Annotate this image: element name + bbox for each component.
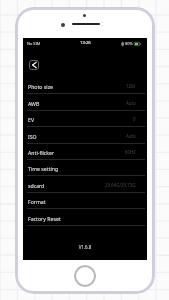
staticText: Auto — [126, 133, 136, 139]
staticText: 60HZ — [125, 149, 136, 155]
staticText: 29.64G/29.73G — [105, 182, 136, 188]
button[interactable]: Anti-flicker — [23, 144, 147, 160]
staticText: Format — [28, 198, 46, 205]
button[interactable]: AWB — [23, 95, 147, 111]
staticText: 0 — [133, 116, 136, 122]
button[interactable]: Format — [23, 193, 147, 209]
staticText: sdcard — [28, 182, 45, 189]
button[interactable]: ISO — [23, 128, 147, 144]
staticText: 12M — [126, 83, 136, 89]
button[interactable]: sdcard — [23, 177, 147, 193]
staticText: AWB — [28, 100, 40, 107]
button[interactable]: Factory Reset — [23, 210, 147, 226]
staticText: 80% — [125, 41, 133, 46]
staticText: Anti-flicker — [28, 149, 55, 156]
staticText: Auto — [126, 100, 136, 106]
button[interactable]: EV — [23, 111, 147, 127]
button[interactable]: Photo size — [23, 78, 147, 94]
staticText: Photo size — [28, 83, 54, 90]
button[interactable]: Home — [74, 265, 96, 287]
button[interactable]: Back — [29, 60, 39, 70]
staticText: EV — [28, 116, 34, 123]
button[interactable]: Time setting — [23, 160, 147, 176]
staticText: ISO — [28, 133, 37, 140]
staticText: No SIM — [27, 41, 41, 46]
staticText: Time setting — [28, 165, 59, 172]
staticText: 13:26 — [80, 40, 91, 46]
staticText: V1.6.8 — [23, 244, 147, 250]
staticText: Factory Reset — [28, 215, 61, 222]
